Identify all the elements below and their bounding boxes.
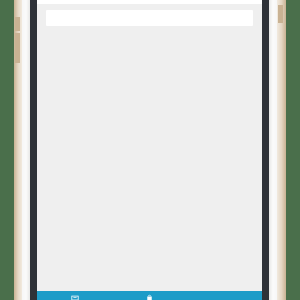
- button[interactable]: Library: [37, 291, 112, 300]
- button[interactable]: Bookmarks: [112, 291, 187, 300]
